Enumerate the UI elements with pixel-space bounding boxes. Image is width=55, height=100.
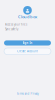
button[interactable]: Sign In — [4, 40, 51, 45]
staticText: Access your files — [5, 23, 27, 26]
button[interactable]: Create Account — [4, 48, 51, 55]
staticText: Create Account — [17, 49, 38, 53]
staticText: Sync safely — [5, 27, 18, 31]
staticText: Terms and Privacy — [16, 92, 38, 95]
staticText: Cloudbox — [18, 14, 37, 19]
button[interactable]: Terms and Privacy — [0, 92, 55, 95]
staticText: Sign In — [22, 41, 32, 45]
